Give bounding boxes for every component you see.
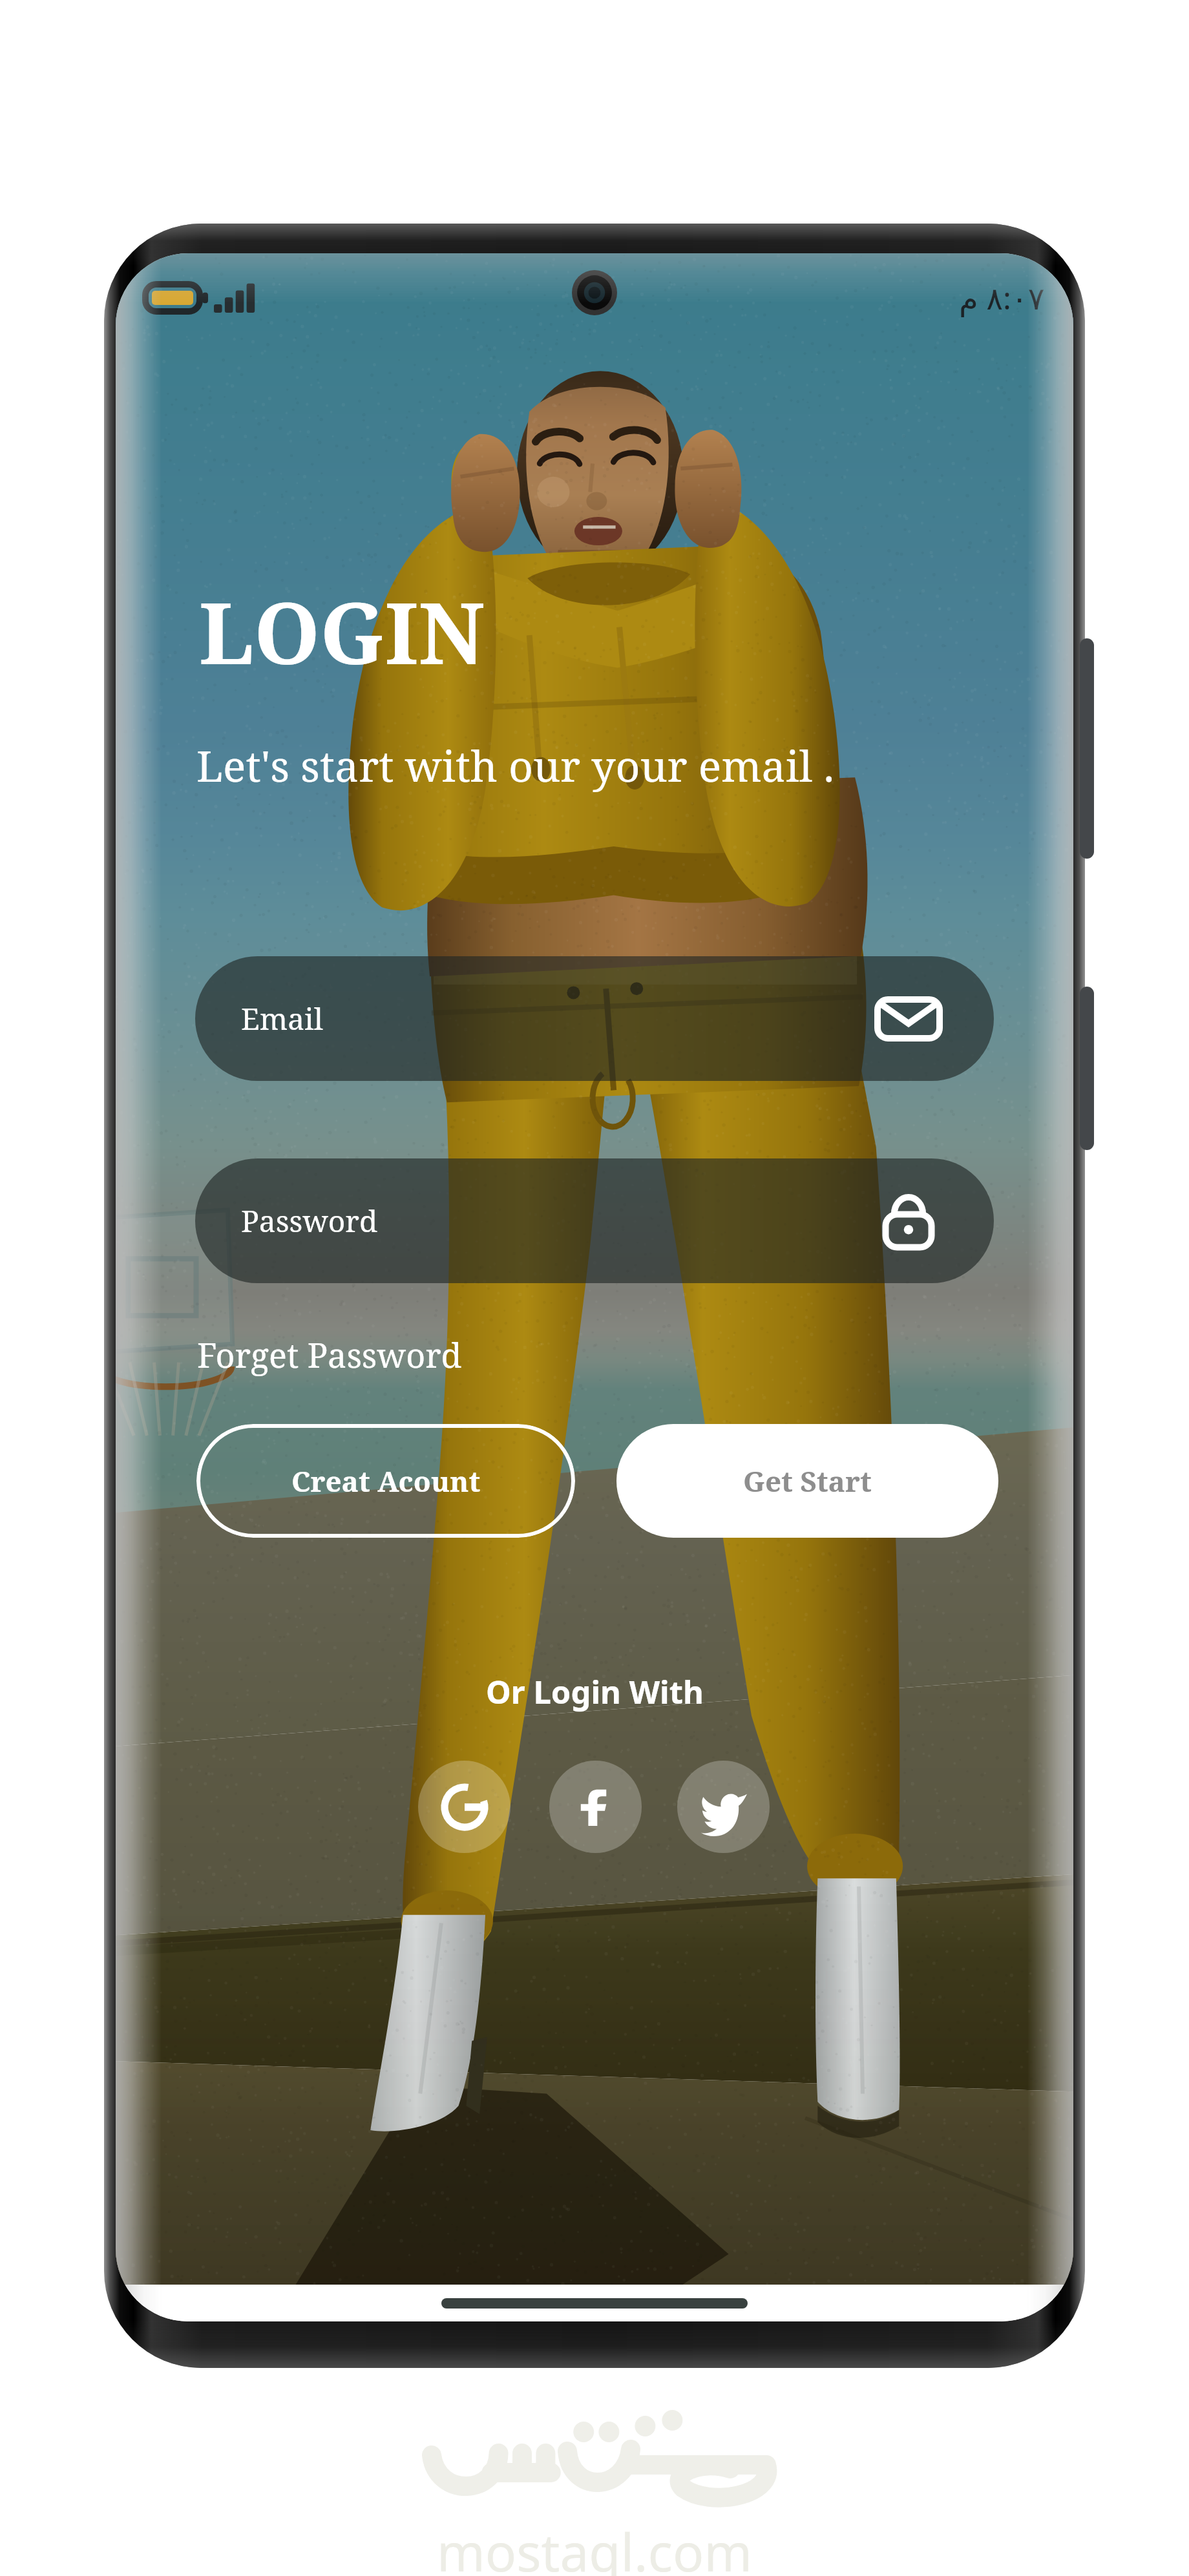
button[interactable]: Password [195,1158,994,1283]
staticText: Email [241,998,324,1039]
button[interactable]: Sign in with Facebook [549,1761,642,1853]
button[interactable]: Sign in with Twitter [677,1761,770,1853]
staticText: mostaql.com [437,2516,753,2576]
button[interactable]: Get Start [616,1424,998,1538]
staticText: Or Login With [486,1670,704,1713]
staticText: Let's start with our your email . [196,736,834,794]
other: Email [878,990,940,1047]
button[interactable]: Email [195,956,994,1081]
staticText: Creat Acount [291,1461,481,1500]
staticText: Password [241,1200,378,1241]
other: Front camera [572,270,617,315]
staticText: LOGIN [199,574,485,689]
staticText: Forget Password [197,1332,462,1377]
button[interactable]: Sign in with Google [418,1761,510,1853]
staticText: ٨:٠٧ م [959,277,1045,319]
button[interactable]: Creat Acount [196,1424,575,1538]
staticText: Get Start [743,1461,872,1500]
other: Password [878,1193,940,1250]
